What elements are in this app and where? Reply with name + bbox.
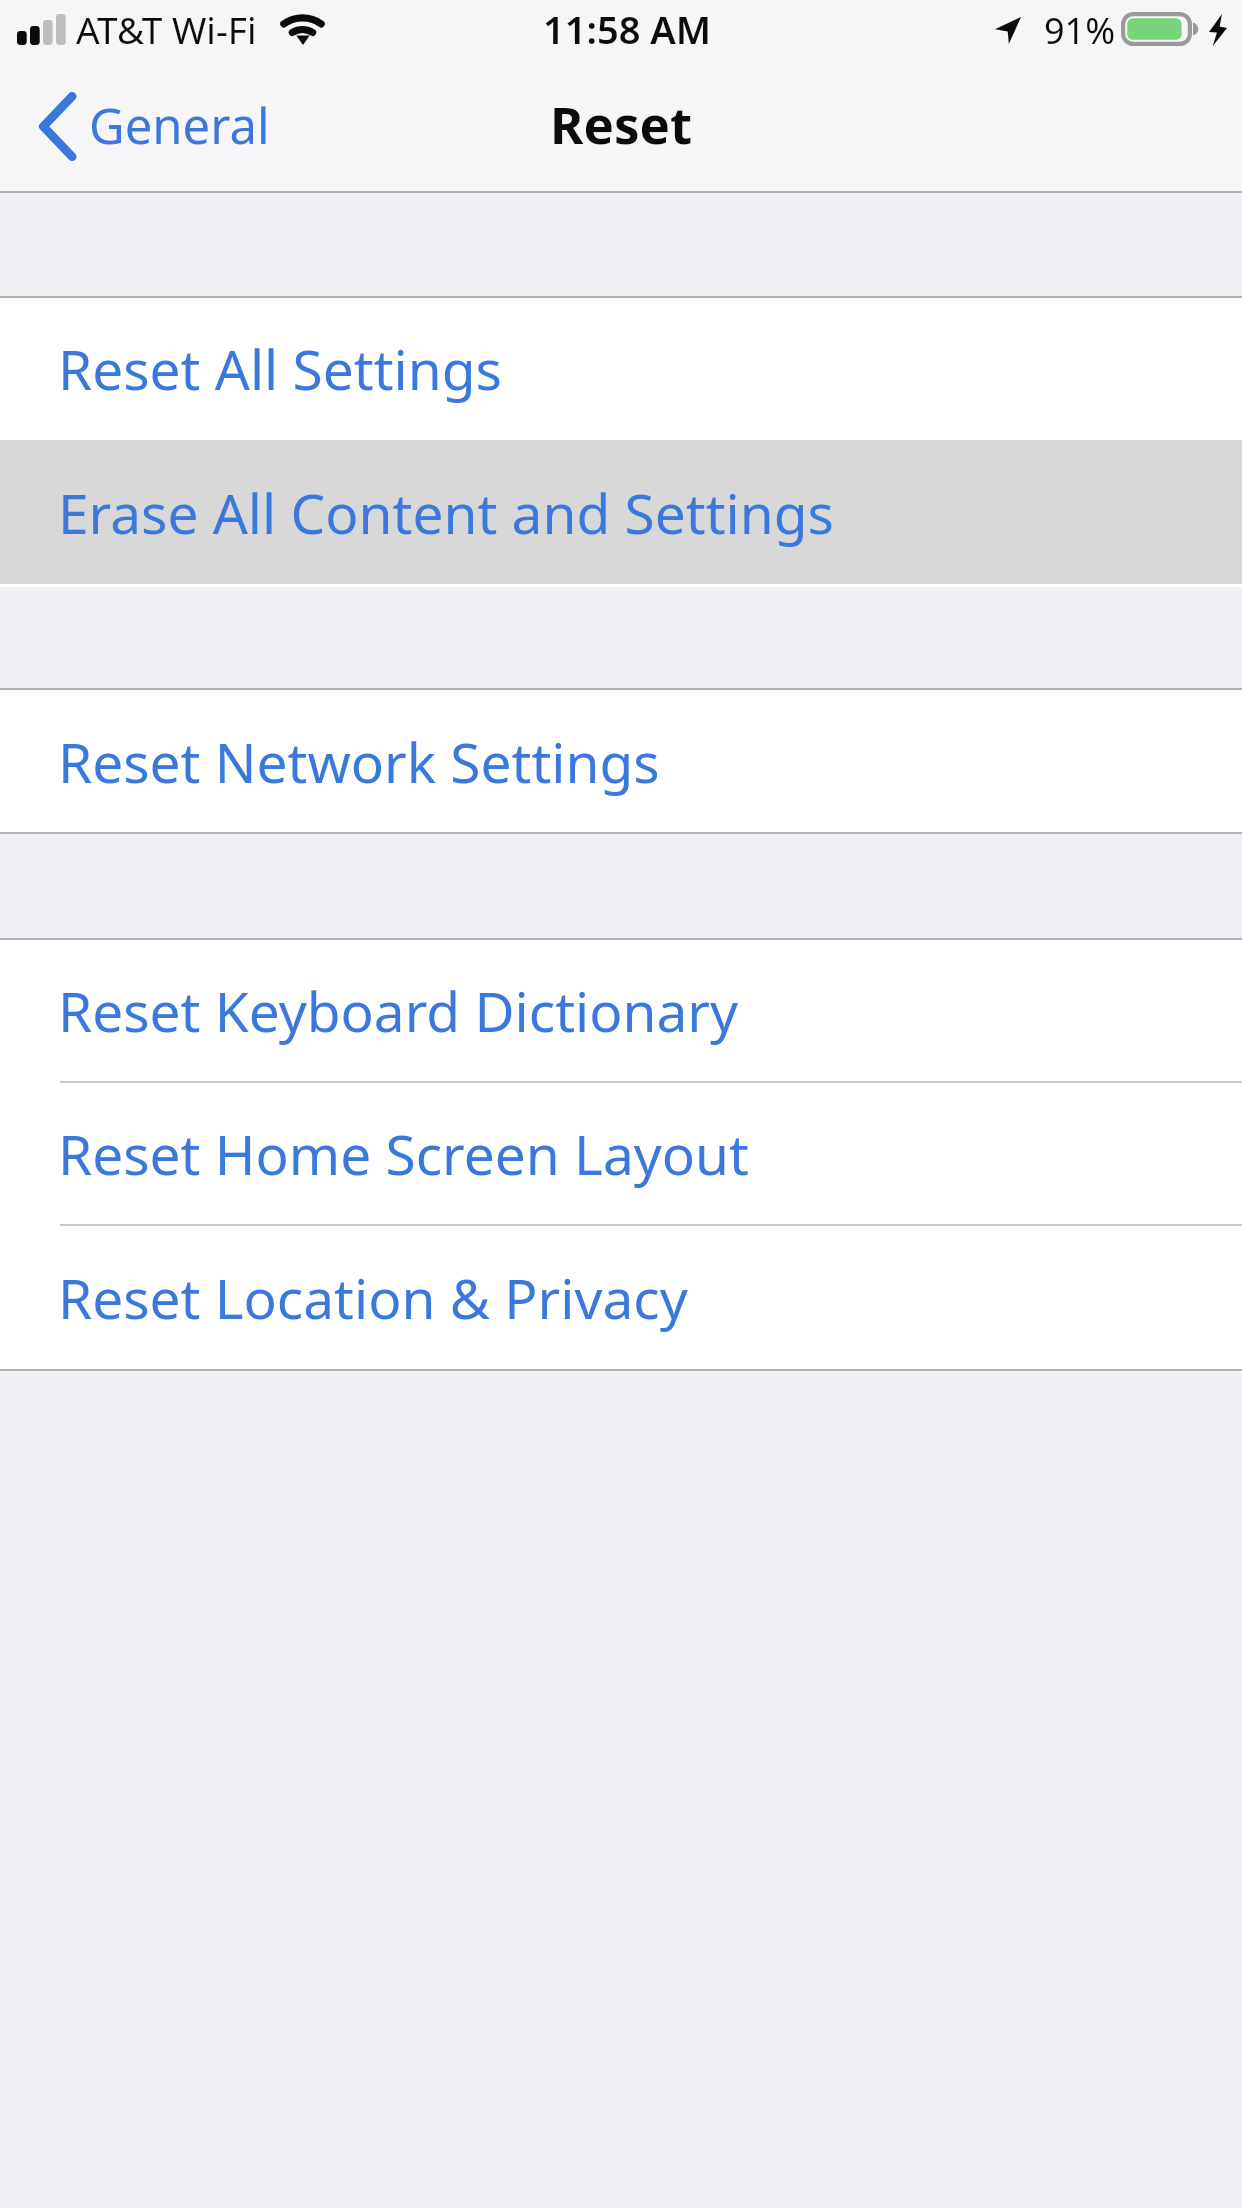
other: Location (995, 17, 1021, 44)
button[interactable]: Back (0, 85, 294, 168)
staticText: Erase All Content and Settings (58, 475, 834, 550)
button[interactable]: Reset Network Settings (0, 690, 1242, 833)
staticText: 11:58 AM (543, 3, 712, 55)
staticText: Reset All Settings (58, 331, 502, 406)
other: Back (38, 93, 76, 160)
staticText: AT&T Wi-Fi (76, 4, 257, 54)
staticText: 91% (1044, 6, 1116, 55)
staticText: Reset Home Screen Layout (58, 1116, 749, 1191)
button[interactable]: Reset All Settings (0, 297, 1242, 440)
button[interactable]: Reset Keyboard Dictionary (0, 939, 1242, 1082)
staticText: General (89, 92, 270, 159)
staticText: Reset Keyboard Dictionary (58, 973, 739, 1048)
button[interactable]: Reset Location & Privacy (0, 1225, 1242, 1370)
staticText: Reset Network Settings (58, 724, 660, 799)
button[interactable]: Erase All Content and Settings (0, 440, 1242, 584)
staticText: Reset Location & Privacy (58, 1260, 688, 1335)
button[interactable]: Reset Home Screen Layout (0, 1082, 1242, 1225)
staticText: Reset (550, 89, 693, 158)
